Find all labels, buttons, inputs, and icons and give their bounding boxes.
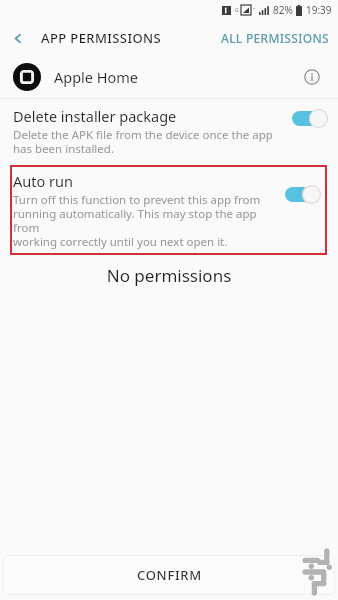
button[interactable]: App info bbox=[296, 61, 328, 93]
button[interactable]: Toggle bbox=[285, 185, 321, 204]
button[interactable]: ALL PERMISSIONS bbox=[212, 22, 338, 54]
staticText: APP PERMISSIONS bbox=[41, 29, 162, 47]
staticText: Turn off this function to prevent this a… bbox=[13, 192, 281, 249]
button[interactable]: Toggle bbox=[292, 109, 328, 128]
staticText: 82% bbox=[273, 3, 293, 17]
button[interactable]: CONFIRM bbox=[3, 555, 335, 595]
staticText: ALL PERMISSIONS bbox=[221, 30, 329, 46]
button[interactable]: Delete installer package bbox=[0, 99, 338, 161]
staticText: No permissions bbox=[0, 264, 338, 287]
staticText: CONFIRM bbox=[137, 566, 202, 584]
staticText: Apple Home bbox=[54, 67, 139, 87]
button[interactable]: Apple Home bbox=[0, 56, 338, 98]
staticText: G bbox=[235, 7, 239, 14]
button[interactable]: Auto run bbox=[10, 165, 327, 255]
staticText: " bbox=[253, 6, 256, 14]
staticText: 19:39 bbox=[306, 3, 332, 17]
staticText: Delete the APK file from the device once… bbox=[13, 127, 273, 156]
staticText: Auto run bbox=[13, 171, 73, 191]
staticText: Delete installer package bbox=[13, 106, 177, 126]
button[interactable]: Back bbox=[0, 20, 36, 56]
